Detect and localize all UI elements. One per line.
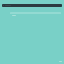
button[interactable]: Search xyxy=(2,4,62,7)
